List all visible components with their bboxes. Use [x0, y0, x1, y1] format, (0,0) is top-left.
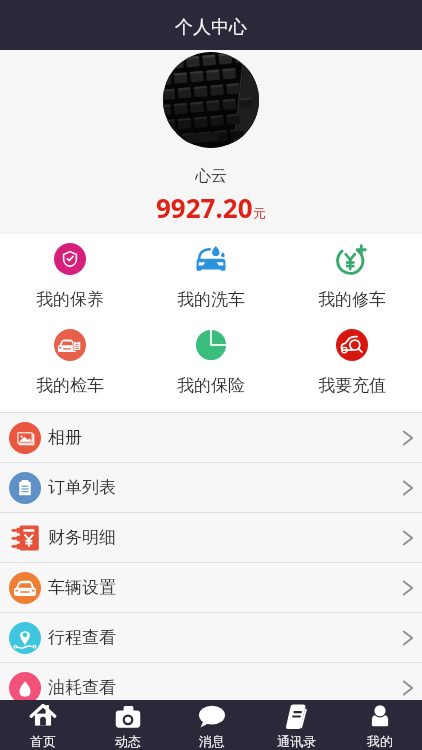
button[interactable]: 我的 — [338, 700, 422, 750]
staticText: 车辆设置 — [48, 577, 116, 598]
staticText: 我的修车 — [318, 289, 386, 310]
staticText: 个人中心 — [175, 16, 247, 39]
button[interactable]: 我的洗车 — [140, 234, 281, 323]
staticText: 我的检车 — [36, 375, 104, 396]
button[interactable]: 我的保险 — [140, 323, 281, 412]
staticText: 心云 — [195, 166, 227, 186]
button[interactable]: 车辆设置 — [0, 563, 422, 612]
staticText: 我的保险 — [177, 375, 245, 396]
staticText: 行程查看 — [48, 627, 116, 648]
button[interactable]: Avatar — [163, 52, 259, 148]
staticText: 我的洗车 — [177, 289, 245, 310]
button[interactable]: 我要充值 — [281, 323, 422, 412]
button[interactable]: 消息 — [170, 700, 254, 750]
button[interactable]: 动态 — [85, 700, 170, 750]
button[interactable]: 行程查看 — [0, 613, 422, 662]
staticText: 我的保养 — [36, 289, 104, 310]
staticText: 首页 — [30, 733, 56, 749]
staticText: 元 — [253, 205, 266, 221]
staticText: 我的 — [367, 733, 393, 749]
staticText: 通讯录 — [277, 733, 316, 749]
button[interactable]: 油耗查看 — [0, 663, 422, 712]
staticText: 我要充值 — [318, 375, 386, 396]
button[interactable]: 订单列表 — [0, 463, 422, 512]
button[interactable]: 首页 — [0, 700, 85, 750]
staticText: 订单列表 — [48, 477, 116, 498]
button[interactable]: 我的检车 — [0, 323, 140, 412]
staticText: 相册 — [48, 427, 82, 448]
staticText: 消息 — [199, 733, 225, 749]
button[interactable]: 我的保养 — [0, 234, 140, 323]
staticText: 动态 — [115, 733, 141, 749]
staticText: 油耗查看 — [48, 677, 116, 698]
button[interactable]: 财务明细 — [0, 513, 422, 562]
staticText: 9927.20 — [156, 190, 253, 225]
button[interactable]: 我的修车 — [281, 234, 422, 323]
staticText: 财务明细 — [48, 527, 116, 548]
button[interactable]: 相册 — [0, 413, 422, 462]
button[interactable]: 通讯录 — [254, 700, 338, 750]
